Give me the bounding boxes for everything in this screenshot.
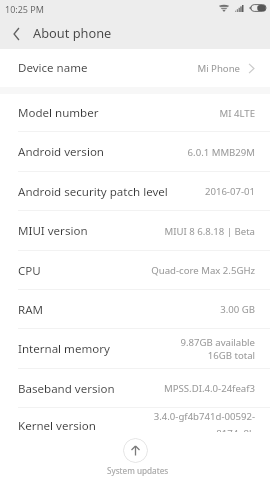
button[interactable]: Back (0, 18, 32, 49)
staticText: MIUI 8 6.8.18 | Beta (164, 225, 255, 238)
staticText: Kernel version (18, 418, 96, 434)
button[interactable]: Baseband version (0, 369, 270, 408)
staticText: System updates (107, 465, 169, 476)
button[interactable]: MIUI version (0, 211, 270, 251)
staticText: RAM (18, 302, 44, 318)
staticText: Quad-core Max 2.5GHz (151, 264, 255, 277)
staticText: 2016-07-01 (204, 185, 255, 198)
staticText: CPU (18, 263, 41, 279)
staticText: About phone (33, 24, 112, 41)
button[interactable]: Kernel version (0, 408, 270, 448)
staticText: Device name (18, 60, 88, 76)
button[interactable]: Android version (0, 132, 270, 172)
staticText: Mi Phone (197, 62, 240, 75)
staticText: MI 4LTE (219, 107, 255, 120)
button[interactable]: CPU (0, 251, 270, 290)
staticText: Baseband version (18, 381, 115, 397)
button[interactable]: System updates (104, 432, 166, 476)
staticText: 3.4.0-gf4b741d-00592- g8174a8b (153, 410, 255, 440)
staticText: Internal memory (18, 341, 110, 357)
staticText: Android security patch level (18, 184, 168, 200)
button[interactable]: Device name (0, 49, 270, 87)
staticText: 3.00 GB (220, 303, 255, 316)
staticText: Model number (18, 105, 99, 121)
staticText: 10:25 PM (5, 3, 44, 15)
staticText: MPSS.DI.4.0-24feaf3 (164, 382, 255, 395)
staticText: Android version (18, 144, 105, 160)
staticText: MIUI version (18, 223, 88, 239)
staticText: 9.87GB available 16GB total (180, 336, 255, 362)
button[interactable]: Android security patch level (0, 172, 270, 211)
button[interactable]: Model number (0, 94, 270, 132)
button[interactable]: RAM (0, 290, 270, 329)
staticText: 6.0.1 MMB29M (187, 146, 255, 159)
button[interactable]: Internal memory (0, 329, 270, 369)
